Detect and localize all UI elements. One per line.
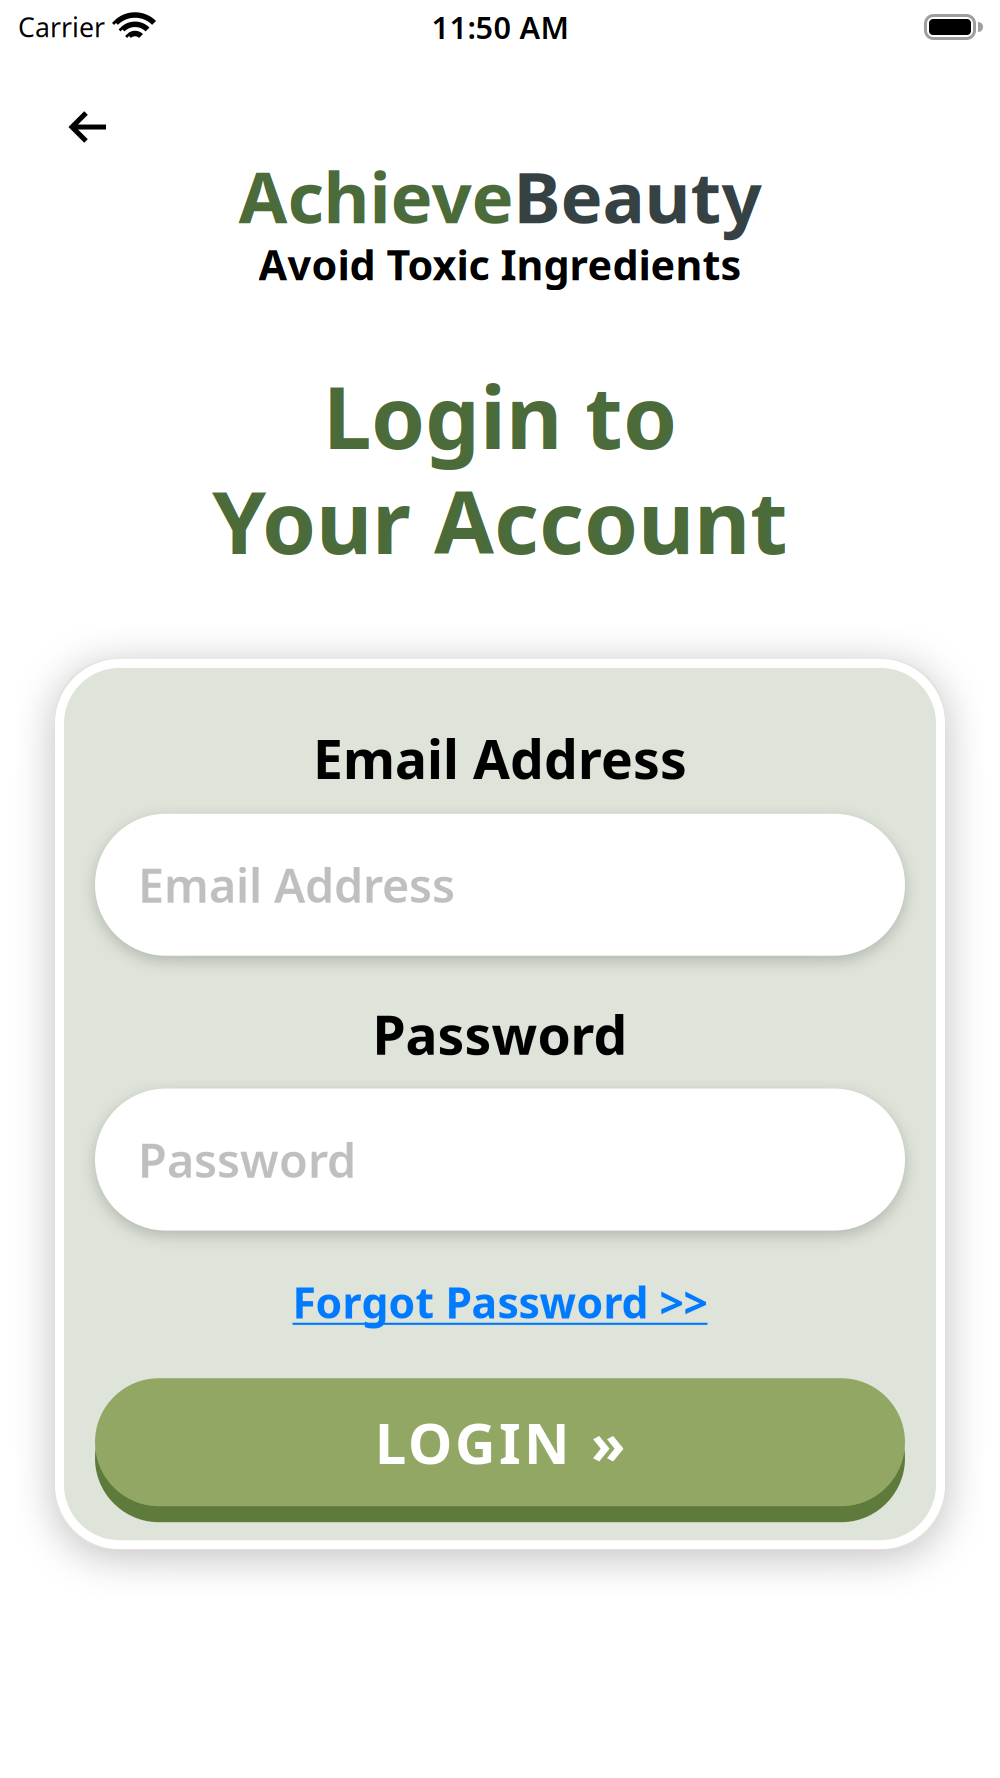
- staticText: Achieve: [238, 149, 513, 243]
- button[interactable]: Back: [69, 110, 107, 144]
- staticText: Forgot Password >>: [292, 1274, 707, 1330]
- staticText: Carrier: [18, 9, 105, 45]
- button[interactable]: Password field: [95, 1089, 905, 1231]
- staticText: LOGIN »: [375, 1405, 625, 1479]
- staticText: Beauty: [513, 149, 761, 243]
- button[interactable]: Email Address field: [95, 814, 905, 956]
- button[interactable]: Forgot Password >>: [292, 1274, 707, 1330]
- staticText: Email Address: [313, 723, 687, 794]
- staticText: Email Address: [138, 854, 455, 916]
- button[interactable]: LOGIN »: [95, 1378, 905, 1522]
- staticText: Avoid Toxic Ingredients: [258, 237, 741, 292]
- staticText: 11:50 AM: [431, 7, 568, 47]
- staticText: Your Account: [212, 463, 788, 578]
- staticText: Password: [138, 1129, 356, 1191]
- staticText: Login to: [323, 358, 677, 473]
- staticText: Password: [372, 999, 627, 1069]
